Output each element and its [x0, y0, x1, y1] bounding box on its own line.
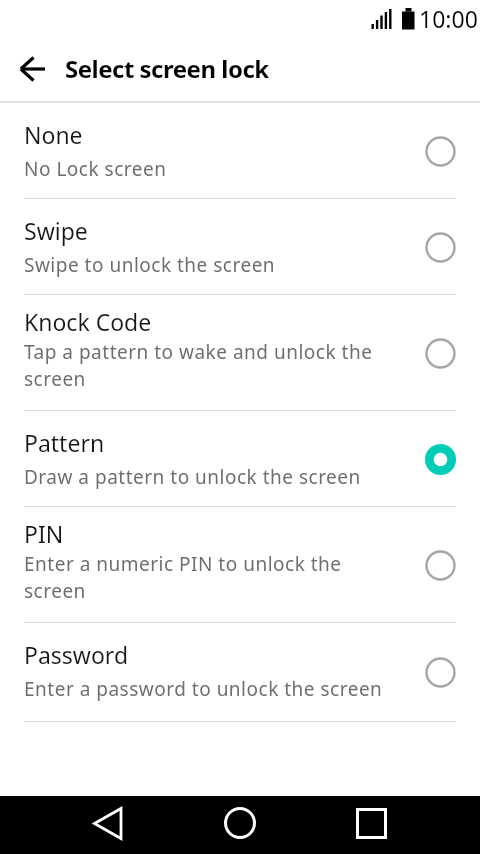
button[interactable]: Password [0, 623, 480, 722]
staticText: Enter a numeric PIN to unlock the screen [24, 551, 342, 604]
staticText: Pattern [24, 427, 105, 458]
staticText: None [24, 119, 83, 150]
button[interactable]: None [0, 103, 480, 199]
button[interactable]: Knock Code [0, 295, 480, 411]
staticText: Password [24, 639, 129, 670]
staticText: Knock Code [24, 306, 152, 337]
staticText: Tap a pattern to wake and unlock the scr… [24, 339, 373, 392]
button[interactable] [78, 794, 138, 852]
button[interactable] [210, 794, 270, 852]
staticText: 10:00 [419, 3, 478, 34]
staticText: Select screen lock [65, 52, 269, 85]
staticText: Swipe to unlock the screen [24, 252, 276, 278]
staticText: Swipe [24, 215, 88, 246]
button[interactable]: Swipe [0, 199, 480, 295]
staticText: Enter a password to unlock the screen [24, 676, 383, 702]
button[interactable]: PIN [0, 507, 480, 623]
button[interactable] [10, 45, 58, 93]
button[interactable] [341, 794, 401, 852]
staticText: PIN [24, 518, 64, 549]
staticText: No Lock screen [24, 156, 167, 182]
button[interactable]: Pattern [0, 411, 480, 507]
staticText: Draw a pattern to unlock the screen [24, 464, 361, 490]
